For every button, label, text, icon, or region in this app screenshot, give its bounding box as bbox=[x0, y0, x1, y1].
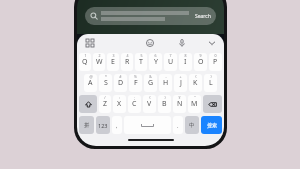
staticText: X bbox=[117, 99, 122, 109]
staticText: 中 bbox=[189, 122, 195, 129]
staticText: D bbox=[118, 78, 124, 88]
staticText: 3 bbox=[112, 53, 115, 58]
staticText: P bbox=[213, 57, 218, 67]
staticText: K bbox=[193, 78, 198, 88]
other: Search bbox=[90, 12, 98, 20]
staticText: I bbox=[184, 57, 187, 67]
button[interactable]: ( bbox=[189, 74, 202, 92]
button[interactable]: Voice input bbox=[176, 37, 187, 48]
button[interactable]: Delete bbox=[203, 95, 222, 113]
staticText: , bbox=[116, 122, 118, 129]
staticText: @ bbox=[89, 74, 93, 79]
button[interactable]: ( bbox=[143, 95, 156, 113]
button[interactable]: 2 bbox=[93, 53, 105, 71]
staticText: H bbox=[163, 78, 169, 88]
staticText: B bbox=[162, 99, 167, 109]
button[interactable]: 6 bbox=[149, 53, 162, 71]
button[interactable]: 1 bbox=[79, 53, 91, 71]
button[interactable]: 7 bbox=[164, 53, 177, 71]
staticText: * bbox=[105, 74, 107, 79]
staticText: & bbox=[149, 74, 152, 79]
staticText: + bbox=[179, 74, 182, 79]
staticText: Z bbox=[103, 99, 108, 109]
staticText: V bbox=[147, 99, 152, 109]
staticText: / bbox=[104, 95, 106, 100]
staticText: 拼 bbox=[84, 122, 90, 129]
button[interactable]: 0 bbox=[209, 53, 222, 71]
staticText: U bbox=[168, 57, 174, 67]
staticText: . bbox=[177, 122, 179, 129]
staticText: N bbox=[177, 99, 183, 109]
button[interactable]: ) bbox=[204, 74, 217, 92]
button[interactable]: 拼 bbox=[79, 116, 94, 134]
staticText: % bbox=[134, 74, 137, 79]
staticText: ) bbox=[210, 74, 212, 79]
button[interactable]: 123 bbox=[96, 116, 110, 134]
button[interactable]: Emoji bbox=[144, 37, 155, 48]
staticText: R bbox=[125, 57, 130, 67]
button[interactable]: - bbox=[159, 74, 172, 92]
staticText: " bbox=[194, 95, 196, 100]
button[interactable]: # bbox=[114, 74, 127, 92]
staticText: O bbox=[198, 57, 204, 67]
staticText: Y bbox=[154, 57, 158, 67]
button[interactable]: 9 bbox=[194, 53, 207, 71]
staticText: 搜索 bbox=[207, 122, 217, 128]
button[interactable]: Keyboard layouts bbox=[84, 37, 95, 48]
staticText: ) bbox=[164, 95, 166, 100]
staticText: W bbox=[96, 57, 103, 67]
staticText: M bbox=[191, 99, 198, 109]
button[interactable]: ¥ bbox=[173, 95, 186, 113]
staticText: G bbox=[148, 78, 154, 88]
button[interactable]: : bbox=[113, 95, 126, 113]
staticText: ( bbox=[149, 95, 151, 100]
button[interactable]: Space bbox=[124, 116, 171, 134]
staticText: 5 bbox=[140, 53, 143, 58]
staticText: 1 bbox=[84, 53, 87, 58]
staticText: 0 bbox=[214, 53, 217, 58]
staticText: Q bbox=[82, 57, 88, 67]
staticText: C bbox=[132, 99, 137, 109]
button[interactable]: " bbox=[188, 95, 201, 113]
staticText: J bbox=[180, 78, 182, 88]
button[interactable]: 搜索 bbox=[201, 116, 222, 134]
button[interactable]: Search bbox=[85, 7, 216, 25]
button[interactable]: . bbox=[173, 116, 183, 134]
button[interactable]: 中 bbox=[185, 116, 199, 134]
staticText: 9 bbox=[199, 53, 202, 58]
button[interactable]: 4 bbox=[121, 53, 133, 71]
staticText: - bbox=[165, 74, 167, 79]
staticText: 7 bbox=[169, 53, 172, 58]
staticText: E bbox=[111, 57, 115, 67]
staticText: ¥ bbox=[178, 95, 181, 100]
button[interactable]: / bbox=[99, 95, 111, 113]
staticText: F bbox=[134, 78, 138, 88]
button[interactable]: Shift bbox=[79, 95, 97, 113]
button[interactable]: * bbox=[99, 74, 112, 92]
button[interactable]: Hide keyboard bbox=[206, 37, 217, 48]
button[interactable]: 5 bbox=[135, 53, 147, 71]
staticText: S bbox=[104, 78, 108, 88]
staticText: # bbox=[119, 74, 122, 79]
staticText: 4 bbox=[126, 53, 129, 58]
staticText: ; bbox=[134, 95, 135, 100]
staticText: A bbox=[88, 78, 93, 88]
button[interactable]: , bbox=[112, 116, 122, 134]
button[interactable]: @ bbox=[84, 74, 97, 92]
button[interactable]: ; bbox=[128, 95, 141, 113]
staticText: T bbox=[139, 57, 143, 67]
staticText: 8 bbox=[184, 53, 187, 58]
staticText: 6 bbox=[154, 53, 157, 58]
staticText: 2 bbox=[98, 53, 101, 58]
button[interactable]: & bbox=[144, 74, 157, 92]
staticText: Search bbox=[195, 13, 211, 20]
button[interactable]: + bbox=[174, 74, 187, 92]
button[interactable]: 3 bbox=[107, 53, 119, 71]
staticText: ( bbox=[195, 74, 197, 79]
button[interactable]: ) bbox=[158, 95, 171, 113]
staticText: : bbox=[119, 95, 120, 100]
staticText: 123 bbox=[98, 122, 108, 129]
button[interactable]: % bbox=[129, 74, 142, 92]
button[interactable]: 8 bbox=[179, 53, 192, 71]
staticText: L bbox=[209, 78, 213, 88]
